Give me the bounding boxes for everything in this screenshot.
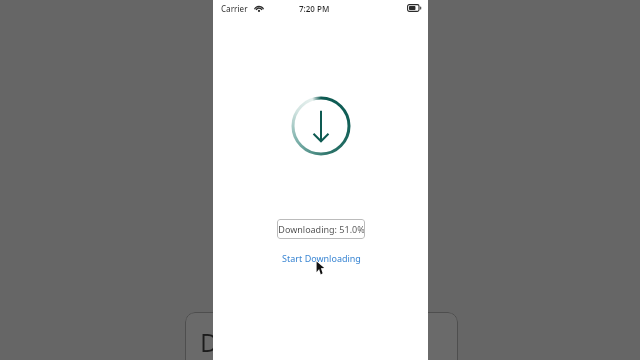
staticText: Start Downloading bbox=[282, 252, 361, 264]
staticText: Do bbox=[200, 325, 234, 359]
staticText: Carrier bbox=[221, 3, 248, 14]
other: Pointer bbox=[316, 261, 326, 275]
button[interactable]: Start Downloading bbox=[274, 249, 368, 266]
staticText: Downloading: 51.0% bbox=[278, 223, 365, 235]
staticText: 7:20 PM bbox=[299, 3, 330, 14]
button[interactable]: Downloading: 51.0% bbox=[277, 219, 365, 239]
